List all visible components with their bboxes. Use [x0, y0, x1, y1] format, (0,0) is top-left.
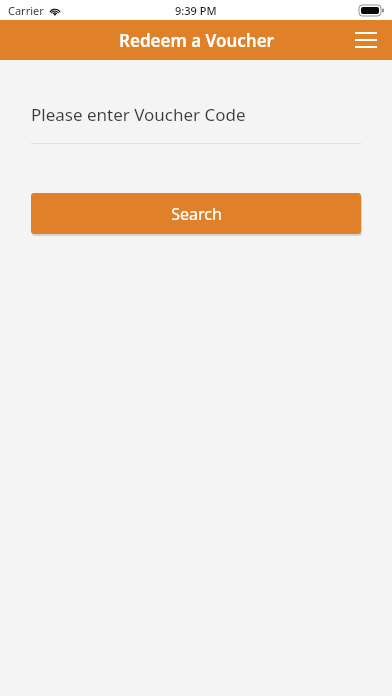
button[interactable]: Search [31, 193, 361, 234]
staticText: Search [171, 203, 222, 225]
staticText: Please enter Voucher Code [31, 103, 246, 126]
staticText: Carrier [8, 3, 44, 18]
button[interactable]: Please enter Voucher Code [31, 103, 361, 144]
button[interactable]: Menu [348, 22, 384, 58]
staticText: Redeem a Voucher [119, 29, 274, 52]
staticText: 9:39 PM [175, 3, 217, 18]
